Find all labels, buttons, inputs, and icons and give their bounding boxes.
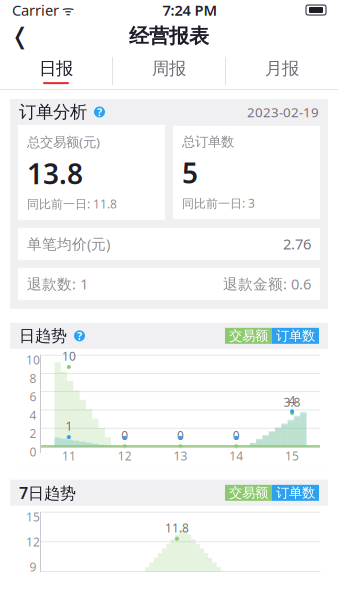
- staticText: 3.8: [284, 394, 301, 410]
- button[interactable]: 订单分析说明: [92, 104, 107, 119]
- button[interactable]: 交易额: [225, 485, 272, 501]
- staticText: 同比前一日: 3: [182, 195, 255, 211]
- staticText: 5: [182, 154, 198, 191]
- staticText: 4: [289, 392, 296, 408]
- staticText: 0: [121, 427, 128, 443]
- staticText: 14: [229, 448, 243, 464]
- staticText: 10: [26, 352, 40, 368]
- button[interactable]: Back: [0, 20, 40, 52]
- staticText: 13.8: [27, 155, 83, 192]
- button[interactable]: 趋势说明: [72, 328, 87, 343]
- staticText: 11: [62, 448, 76, 464]
- staticText: 日报: [39, 58, 73, 79]
- staticText: 总订单数: [182, 134, 234, 150]
- staticText: 订单分析: [19, 101, 87, 123]
- staticText: 订单数: [276, 485, 315, 501]
- staticText: 日趋势: [19, 326, 67, 346]
- staticText: 4: [29, 407, 36, 423]
- staticText: 退款数: 1: [27, 274, 88, 294]
- staticText: Carrier: [12, 0, 59, 20]
- staticText: 订单数: [276, 328, 315, 344]
- staticText: 交易额: [229, 328, 268, 344]
- staticText: 0: [233, 427, 240, 443]
- staticText: 1: [65, 418, 72, 434]
- staticText: 0: [177, 427, 184, 443]
- button[interactable]: 日报: [0, 50, 112, 92]
- staticText: 11.8: [165, 520, 189, 536]
- staticText: 2: [29, 425, 36, 441]
- staticText: 周报: [152, 58, 186, 79]
- staticText: 交易额: [229, 485, 268, 501]
- button[interactable]: 订单数: [272, 328, 319, 344]
- staticText: 0: [29, 444, 36, 460]
- staticText: 15: [26, 509, 40, 525]
- staticText: 6: [29, 389, 36, 405]
- button[interactable]: 周报: [113, 50, 225, 92]
- staticText: 2.76: [283, 234, 311, 254]
- button[interactable]: 交易额: [225, 328, 272, 344]
- staticText: ?: [97, 105, 102, 119]
- staticText: 12: [118, 448, 132, 464]
- staticText: 15: [285, 448, 299, 464]
- staticText: 7日趋势: [19, 482, 76, 503]
- staticText: ?: [77, 329, 82, 343]
- button[interactable]: 月报: [226, 50, 338, 92]
- staticText: 9: [29, 559, 36, 575]
- staticText: ❬: [10, 23, 29, 49]
- staticText: 退款金额: 0.6: [223, 274, 311, 294]
- staticText: 单笔均价(元): [27, 234, 110, 254]
- staticText: 7:24 PM: [162, 0, 217, 20]
- button[interactable]: 订单数: [272, 485, 319, 501]
- staticText: 13: [173, 448, 187, 464]
- staticText: 2023-02-19: [247, 103, 319, 121]
- staticText: 8: [29, 370, 36, 386]
- staticText: 10: [62, 348, 76, 364]
- staticText: 总交易额(元): [27, 133, 100, 151]
- staticText: 月报: [265, 58, 299, 79]
- staticText: 12: [26, 534, 40, 550]
- staticText: 同比前一日: 11.8: [27, 196, 117, 212]
- staticText: 经营报表: [129, 24, 209, 48]
- staticText: ᯤ: [59, 1, 74, 19]
